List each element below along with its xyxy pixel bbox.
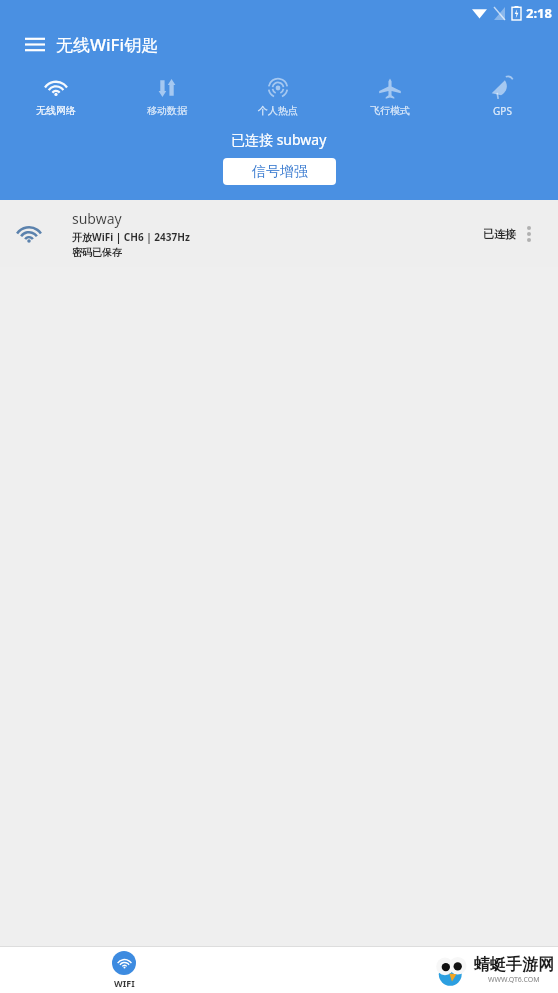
staticText: 信号增强 [252,163,308,181]
staticText: 无线网络 [36,104,76,117]
button[interactable]: Menu [14,26,56,63]
button[interactable]: WIFI [112,951,136,989]
staticText: 2:18 [526,4,552,22]
staticText: GPS [493,104,512,118]
staticText: 飞行模式 [370,104,410,117]
staticText: 已连接 subway [231,130,327,149]
staticText: 已连接 [483,227,516,241]
staticText: 蜻蜓手游网 [474,955,554,975]
staticText: 无线WiFi钥匙 [56,33,159,56]
staticText: WWW.QT6.COM [488,975,540,985]
staticText: 密码已保存 [72,246,122,259]
staticText: subway [72,209,122,228]
button[interactable]: 飞行模式 [334,69,446,124]
staticText: 移动数据 [147,104,187,117]
button[interactable]: 个人热点 [222,69,334,124]
staticText: 开放WiFi | CH6 | 2437Hz [72,230,190,244]
button[interactable]: subway [0,200,558,267]
button[interactable]: 移动数据 [111,69,222,124]
button[interactable]: More options [516,214,542,254]
staticText: WIFI [114,977,135,989]
button[interactable]: GPS [446,69,558,124]
button[interactable]: 信号增强 [223,158,336,185]
staticText: 个人热点 [258,104,298,117]
button[interactable]: 无线网络 [0,69,111,124]
